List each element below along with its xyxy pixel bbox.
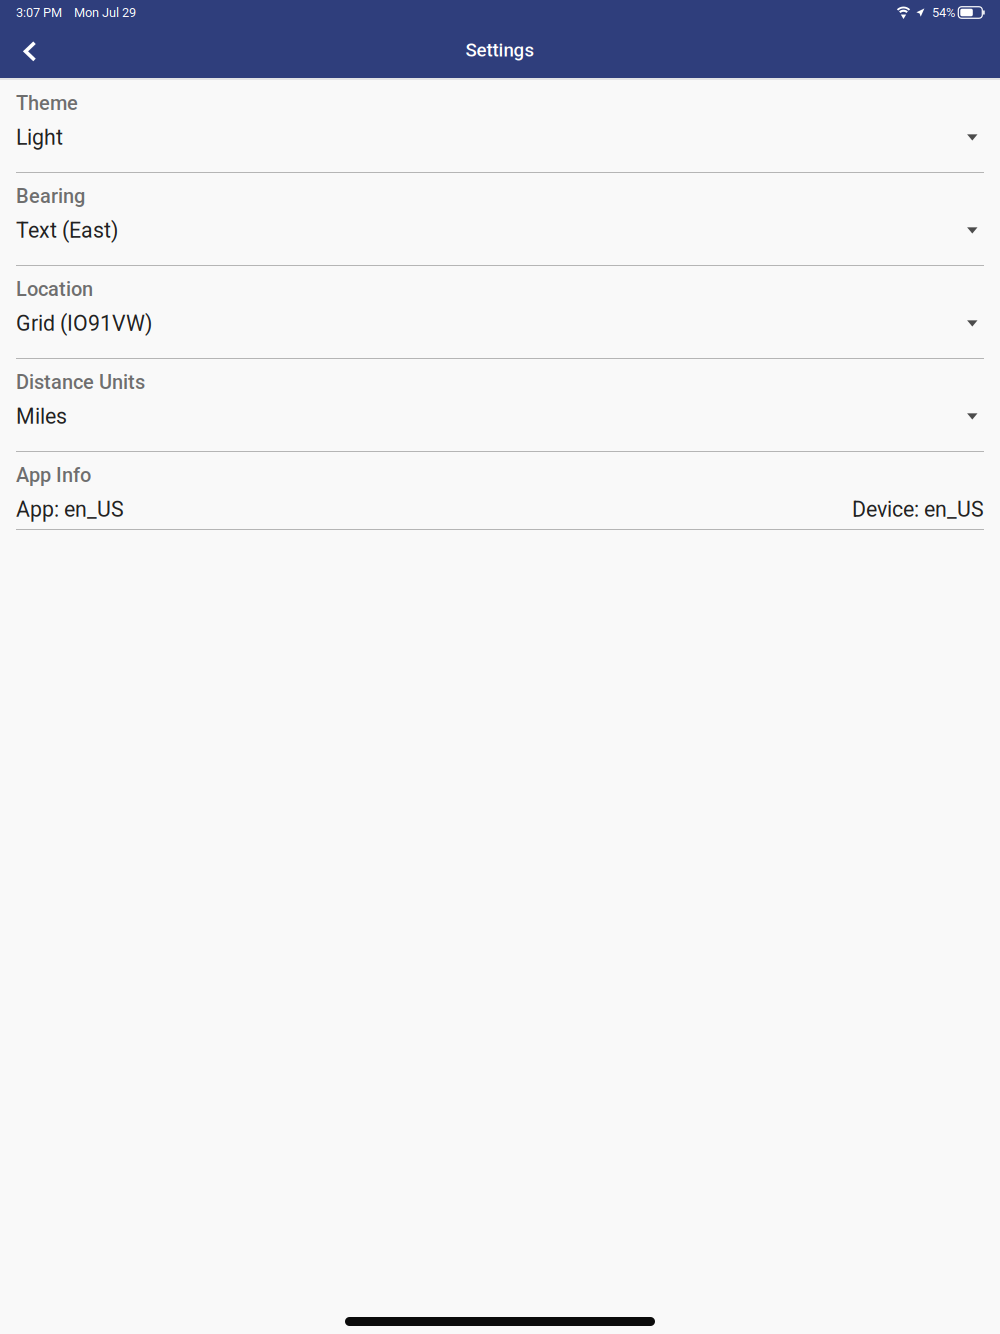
- button[interactable]: Distance Units: [0, 359, 1000, 452]
- staticText: Bearing: [16, 184, 85, 208]
- staticText: Grid (IO91VW): [16, 311, 152, 336]
- staticText: App: en_US: [16, 497, 124, 522]
- staticText: Theme: [16, 91, 78, 115]
- staticText: 3:07 PM: [16, 5, 62, 20]
- staticText: Device: en_US: [852, 497, 984, 522]
- button[interactable]: Theme: [0, 80, 1000, 173]
- staticText: Settings: [465, 39, 534, 61]
- staticText: Mon Jul 29: [74, 5, 136, 20]
- button[interactable]: Bearing: [0, 173, 1000, 266]
- staticText: App Info: [16, 463, 91, 487]
- button[interactable]: Location: [0, 266, 1000, 359]
- staticText: 54%: [932, 5, 955, 20]
- staticText: Light: [16, 125, 63, 150]
- staticText: Text (East): [16, 218, 118, 243]
- button[interactable]: Back: [8, 28, 52, 74]
- staticText: Distance Units: [16, 370, 145, 394]
- staticText: Miles: [16, 404, 67, 429]
- staticText: Location: [16, 277, 93, 301]
